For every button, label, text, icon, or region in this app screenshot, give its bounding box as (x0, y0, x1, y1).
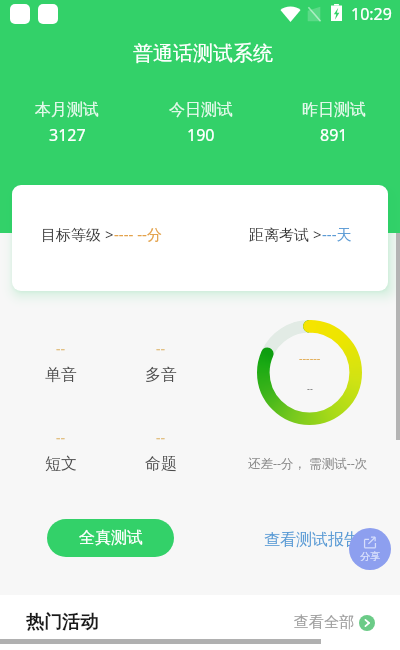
staticText: 目标等级 > (41, 224, 114, 244)
button[interactable]: -- (12, 339, 110, 385)
staticText: 短文 (45, 454, 77, 474)
staticText: -- (56, 339, 66, 358)
staticText: 多音 (145, 365, 177, 385)
staticText: 10:29 (351, 3, 392, 25)
staticText: 还差--分， 需测试--次 (248, 455, 368, 472)
staticText: 命题 (145, 454, 177, 474)
staticText: 热门活动 (26, 611, 98, 634)
button[interactable]: 今日测试 (134, 100, 267, 146)
staticText: ------ (299, 350, 321, 365)
button[interactable]: 全真测试 (47, 519, 174, 557)
button[interactable]: -- (12, 428, 110, 474)
button[interactable]: 本月测试 (0, 100, 134, 146)
staticText: 单音 (45, 365, 77, 385)
staticText: -- (156, 339, 166, 358)
staticText: 今日测试 (169, 100, 233, 120)
staticText: 本月测试 (35, 100, 99, 120)
staticText: 查看全部 (294, 613, 354, 632)
staticText: 查看测试报告 (264, 530, 360, 550)
staticText: 昨日测试 (302, 100, 366, 120)
button[interactable]: -- (112, 339, 210, 385)
staticText: 891 (320, 124, 348, 146)
button[interactable]: 查看全部 (294, 613, 375, 632)
staticText: ---- --分 (114, 224, 162, 244)
button[interactable]: 目标等级 > (41, 185, 201, 287)
staticText: 普通话测试系统 (133, 41, 273, 66)
staticText: 全真测试 (79, 528, 143, 548)
button[interactable]: -- (112, 428, 210, 474)
staticText: ---天 (322, 224, 352, 244)
button[interactable]: 分享 (349, 528, 391, 570)
staticText: 距离考试 > (249, 224, 322, 244)
staticText: -- (156, 428, 166, 447)
staticText: -- (56, 428, 66, 447)
button[interactable]: 昨日测试 (267, 100, 400, 146)
staticText: -- (307, 382, 313, 394)
staticText: 190 (187, 124, 215, 146)
button[interactable]: 距离考试 > (249, 185, 388, 287)
staticText: 3127 (49, 124, 86, 146)
staticText: 分享 (360, 550, 380, 563)
button[interactable]: 查看测试报告 (258, 524, 366, 556)
